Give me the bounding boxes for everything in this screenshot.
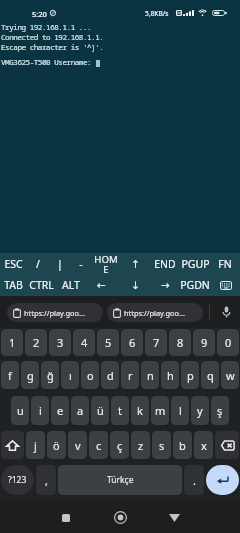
button[interactable]: - [70, 253, 91, 274]
button[interactable]: f [1, 361, 19, 389]
staticText: Türkçe [107, 474, 134, 486]
button[interactable]: j [26, 431, 45, 459]
button[interactable]: Recents [50, 502, 81, 533]
staticText: v [75, 438, 81, 453]
button[interactable]: 4 [73, 329, 95, 356]
staticText: . [193, 473, 196, 488]
button[interactable]: 1 [1, 329, 23, 356]
button[interactable]: 2 [25, 329, 47, 356]
button[interactable]: c [89, 431, 108, 459]
button[interactable]: t [111, 396, 129, 425]
staticText: 9 [201, 335, 208, 350]
staticText: ğ [47, 368, 54, 383]
staticText: → [161, 279, 170, 291]
button[interactable]: 6 [121, 329, 143, 356]
button[interactable]: / [26, 253, 50, 274]
button[interactable]: w [221, 361, 239, 389]
button[interactable]: 8 [169, 329, 191, 356]
button[interactable]: Enter [206, 465, 239, 495]
staticText: r [128, 368, 133, 383]
staticText: 4 [81, 335, 88, 350]
staticText: g [27, 368, 34, 383]
button[interactable]: ü [91, 396, 109, 425]
button[interactable]: Shift [1, 431, 24, 459]
button[interactable]: ↑ [120, 253, 150, 274]
button[interactable]: m [151, 396, 169, 425]
button[interactable]: k [131, 396, 149, 425]
button[interactable]: Backspace [215, 431, 239, 459]
button[interactable]: ç [110, 431, 129, 459]
staticText: 3 [57, 335, 64, 350]
button[interactable]: ↓ [118, 274, 153, 296]
button[interactable]: HOME [91, 253, 120, 274]
button[interactable]: z [131, 431, 150, 459]
button[interactable]: . [184, 465, 204, 495]
button[interactable]: e [51, 396, 69, 425]
button[interactable]: 0 [217, 329, 239, 356]
button[interactable]: g [21, 361, 39, 389]
staticText: m [155, 403, 166, 418]
button[interactable]: ö [47, 431, 66, 459]
button[interactable]: ş [211, 396, 229, 425]
staticText: u [17, 403, 24, 418]
button[interactable]: END [150, 253, 180, 274]
staticText: ç [117, 438, 123, 453]
staticText: ?123 [8, 474, 27, 486]
button[interactable]: u [11, 396, 29, 425]
button[interactable]: Hide keyboard [212, 274, 240, 296]
button[interactable]: l [171, 396, 189, 425]
button[interactable]: 5 [97, 329, 119, 356]
button[interactable]: https://play.goo... [107, 303, 203, 322]
button[interactable]: , [36, 465, 56, 495]
button[interactable]: ?123 [1, 465, 34, 495]
button[interactable]: n [141, 361, 159, 389]
button[interactable]: ALT [56, 274, 85, 296]
staticText: p [187, 368, 194, 383]
staticText: e [57, 403, 64, 418]
button[interactable]: i [31, 396, 49, 425]
button[interactable]: y [191, 396, 209, 425]
staticText: HOME [94, 253, 118, 274]
staticText: f [8, 368, 12, 383]
button[interactable]: x [194, 431, 213, 459]
button[interactable]: 9 [193, 329, 215, 356]
button[interactable]: ← [85, 274, 118, 296]
staticText: 0 [225, 335, 232, 350]
button[interactable]: Voice input [215, 296, 237, 328]
button[interactable]: s [152, 431, 171, 459]
button[interactable]: 7 [145, 329, 167, 356]
button[interactable]: ğ [41, 361, 59, 389]
staticText: PGDN [180, 278, 210, 292]
button[interactable]: h [161, 361, 179, 389]
button[interactable]: TAB [0, 274, 27, 296]
button[interactable]: ESC [0, 253, 26, 274]
button[interactable]: Back [159, 502, 190, 533]
button[interactable]: r [121, 361, 139, 389]
button[interactable]: PGUP [180, 253, 210, 274]
staticText: k [137, 403, 143, 418]
staticText: Trying 192.168.1.1 ... [1, 22, 92, 32]
button[interactable]: ı [61, 361, 79, 389]
button[interactable]: PGDN [178, 274, 212, 296]
staticText: Connected to 192.168.1.1. [1, 32, 104, 42]
staticText: o [87, 368, 94, 383]
staticText: h [167, 368, 174, 383]
button[interactable]: d [101, 361, 119, 389]
button[interactable]: FN [210, 253, 240, 274]
staticText: d [107, 368, 114, 383]
staticText: CTRL [29, 278, 54, 292]
button[interactable]: | [50, 253, 70, 274]
button[interactable]: v [68, 431, 87, 459]
button[interactable]: b [173, 431, 192, 459]
button[interactable]: Home [105, 502, 136, 533]
button[interactable]: https://play.goo... [7, 303, 103, 322]
button[interactable]: 3 [49, 329, 71, 356]
staticText: 7 [153, 335, 160, 350]
button[interactable]: p [181, 361, 199, 389]
button[interactable]: CTRL [27, 274, 56, 296]
button[interactable]: o [81, 361, 99, 389]
button[interactable]: q [201, 361, 219, 389]
button[interactable]: Türkçe [58, 465, 182, 495]
button[interactable]: a [71, 396, 89, 425]
button[interactable]: → [153, 274, 178, 296]
